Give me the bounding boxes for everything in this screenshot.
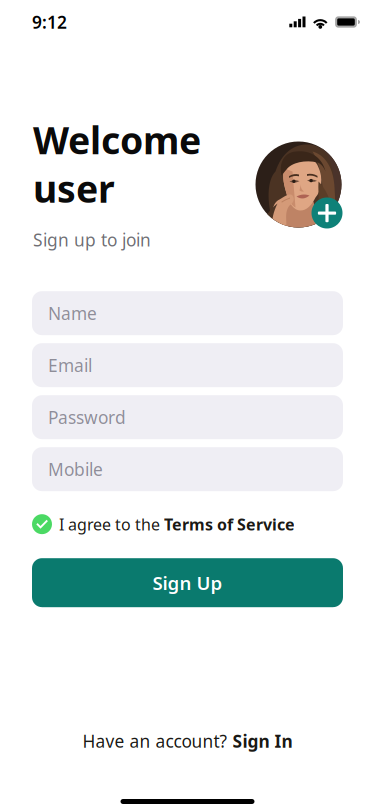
staticText: Have an account? Sign In (82, 729, 292, 752)
button[interactable]: Name (32, 291, 343, 335)
staticText: Email (48, 354, 92, 377)
button[interactable]: Email (32, 343, 343, 387)
button[interactable]: I agree to the Terms of Service (0, 514, 375, 534)
button[interactable]: Change profile photo (255, 141, 342, 228)
staticText: I agree to the Terms of Service (59, 513, 295, 535)
button[interactable]: Have an account? Sign In (0, 730, 375, 752)
staticText: user (33, 164, 115, 213)
staticText: Password (48, 406, 126, 429)
button[interactable]: Mobile (32, 447, 343, 491)
staticText: Welcome (33, 115, 201, 165)
staticText: Sign Up (152, 570, 222, 595)
button[interactable]: Sign Up (32, 558, 343, 607)
staticText: Name (48, 302, 97, 325)
staticText: 9:12 (32, 10, 67, 33)
staticText: Mobile (48, 458, 103, 481)
button[interactable]: Password (32, 395, 343, 439)
staticText: Sign up to join (33, 228, 151, 251)
